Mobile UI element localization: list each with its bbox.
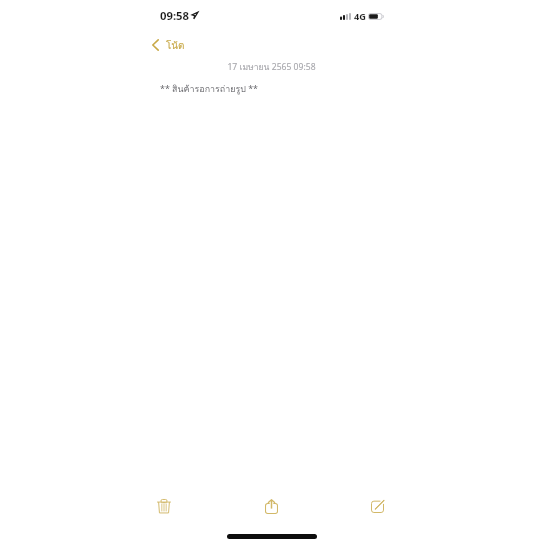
staticText: ** สินค้ารอการถ่ายรูป ** — [160, 82, 258, 96]
button[interactable]: โน้ต — [149, 35, 188, 55]
staticText: 4G — [354, 10, 366, 23]
button[interactable]: New note — [364, 493, 390, 519]
staticText: 09:58 — [160, 8, 190, 23]
staticText: 17 เมษายน 2565 09:58 — [146, 60, 397, 74]
staticText: โน้ต — [166, 38, 185, 54]
button[interactable]: Share — [258, 493, 284, 519]
button[interactable]: Delete note — [151, 493, 177, 519]
